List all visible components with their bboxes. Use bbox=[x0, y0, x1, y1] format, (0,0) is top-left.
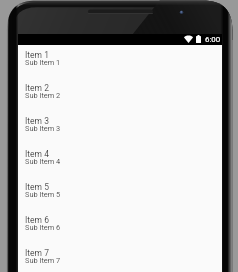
staticText: Sub Item 3 bbox=[25, 124, 61, 133]
staticText: Item 1 bbox=[25, 50, 49, 60]
staticText: Item 2 bbox=[25, 83, 49, 93]
button[interactable]: Item 7 bbox=[18, 243, 222, 272]
staticText: Sub Item 7 bbox=[25, 256, 61, 265]
staticText: Sub Item 2 bbox=[25, 91, 61, 100]
staticText: Sub Item 6 bbox=[25, 223, 61, 232]
staticText: Item 3 bbox=[25, 116, 49, 126]
staticText: Item 6 bbox=[25, 215, 49, 225]
staticText: 6:00 bbox=[205, 35, 221, 44]
button[interactable]: Item 4 bbox=[18, 144, 222, 177]
staticText: Sub Item 4 bbox=[25, 157, 61, 166]
staticText: Item 5 bbox=[25, 182, 49, 192]
button[interactable]: Item 5 bbox=[18, 177, 222, 210]
button[interactable]: Item 3 bbox=[18, 111, 222, 144]
button[interactable]: Item 2 bbox=[18, 78, 222, 111]
button[interactable]: Item 6 bbox=[18, 210, 222, 243]
staticText: Sub Item 1 bbox=[25, 58, 61, 67]
staticText: Item 4 bbox=[25, 149, 49, 159]
button[interactable]: Item 1 bbox=[18, 45, 222, 78]
staticText: Sub Item 5 bbox=[25, 190, 61, 199]
staticText: Item 7 bbox=[25, 248, 49, 258]
